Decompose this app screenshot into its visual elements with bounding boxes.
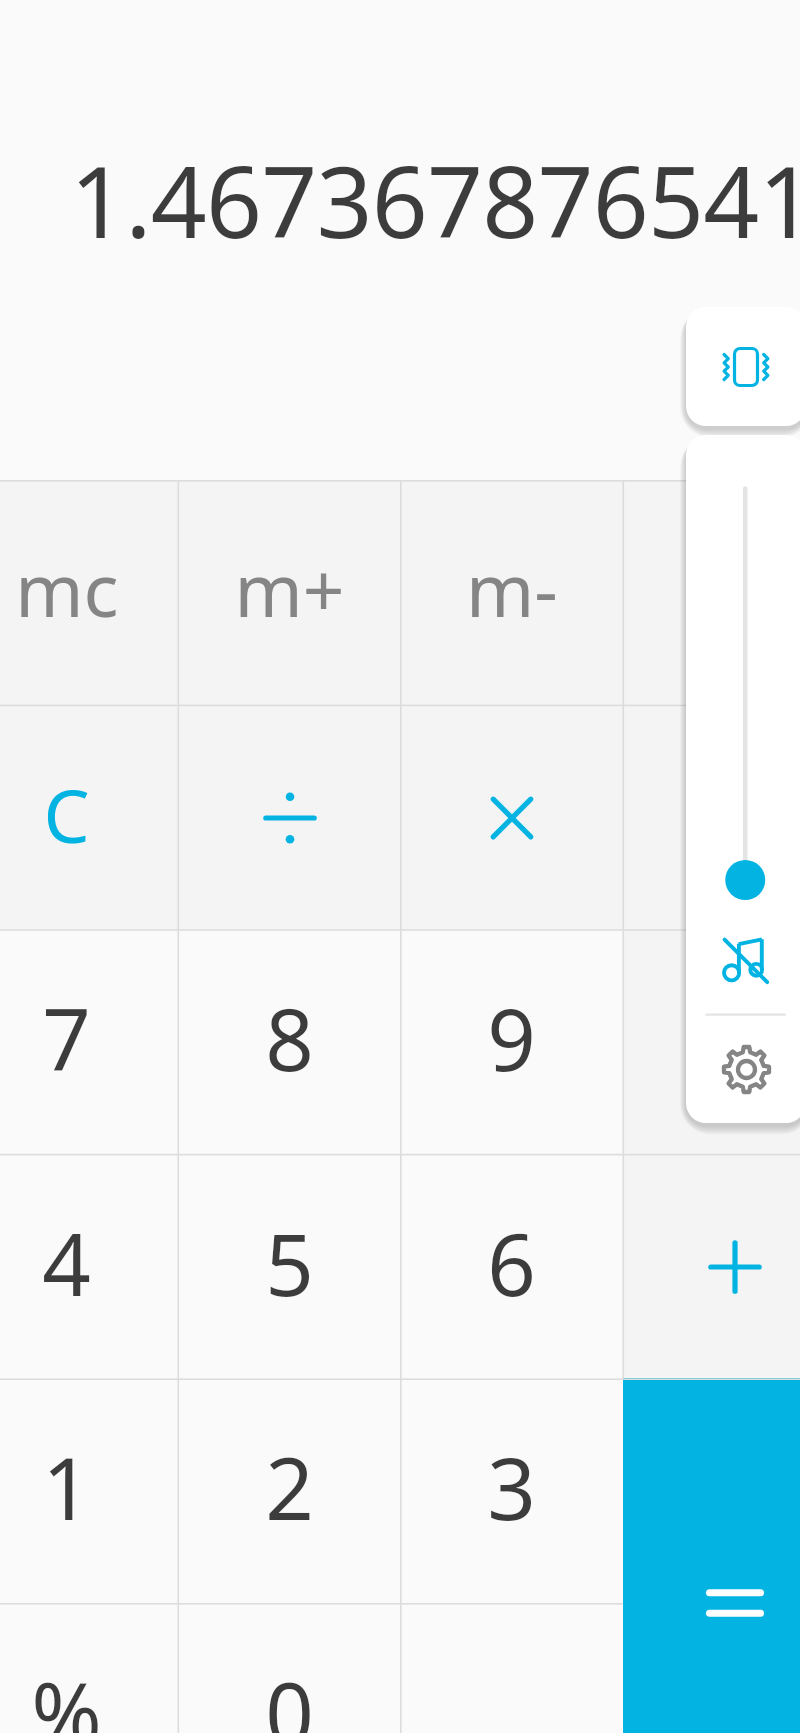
button[interactable]: mc	[0, 480, 178, 705]
button[interactable]: Equals	[623, 1378, 800, 1733]
staticText: 8	[265, 980, 314, 1096]
button[interactable]: Divide	[178, 705, 401, 930]
staticText: 9	[487, 980, 536, 1096]
staticText: 4	[42, 1205, 91, 1321]
staticText: mc	[15, 539, 119, 638]
staticText: m+	[234, 539, 345, 638]
staticText: mr	[685, 539, 784, 638]
button[interactable]: Minus	[623, 929, 800, 1154]
button[interactable]: m+	[178, 480, 401, 705]
button[interactable]: 8	[178, 929, 401, 1154]
button[interactable]: 7	[0, 929, 178, 1154]
button[interactable]: 9	[400, 929, 623, 1154]
button[interactable]: Vibrate mode	[686, 307, 800, 426]
button[interactable]: Mute media	[722, 937, 770, 985]
button[interactable]: Multiply	[400, 705, 623, 930]
button[interactable]: 5	[178, 1154, 401, 1379]
staticText: 1.467367876541	[70, 133, 800, 266]
button[interactable]: 0	[178, 1603, 401, 1733]
button[interactable]: 3	[400, 1378, 623, 1603]
button[interactable]: .	[400, 1603, 623, 1733]
staticText: 3	[487, 1429, 536, 1545]
button[interactable]: Backspace	[623, 705, 800, 930]
button[interactable]: Sound settings	[722, 1044, 771, 1094]
button[interactable]: 6	[400, 1154, 623, 1379]
button[interactable]: C	[0, 705, 178, 930]
button[interactable]: 2	[178, 1378, 401, 1603]
button[interactable]: 1	[0, 1378, 178, 1603]
staticText: 6	[487, 1205, 536, 1321]
staticText: 2	[265, 1429, 314, 1545]
staticText: %	[31, 1654, 102, 1733]
staticText: 5	[265, 1205, 314, 1321]
button[interactable]: %	[0, 1603, 178, 1733]
staticText: C	[43, 765, 90, 864]
button[interactable]: m-	[400, 480, 623, 705]
button[interactable]: Plus	[623, 1154, 800, 1379]
button[interactable]: 4	[0, 1154, 178, 1379]
button[interactable]: mr	[623, 480, 800, 705]
staticText: 1	[42, 1429, 91, 1545]
staticText: m-	[466, 539, 558, 638]
staticText: 0	[265, 1654, 314, 1733]
staticText: 7	[42, 980, 91, 1096]
